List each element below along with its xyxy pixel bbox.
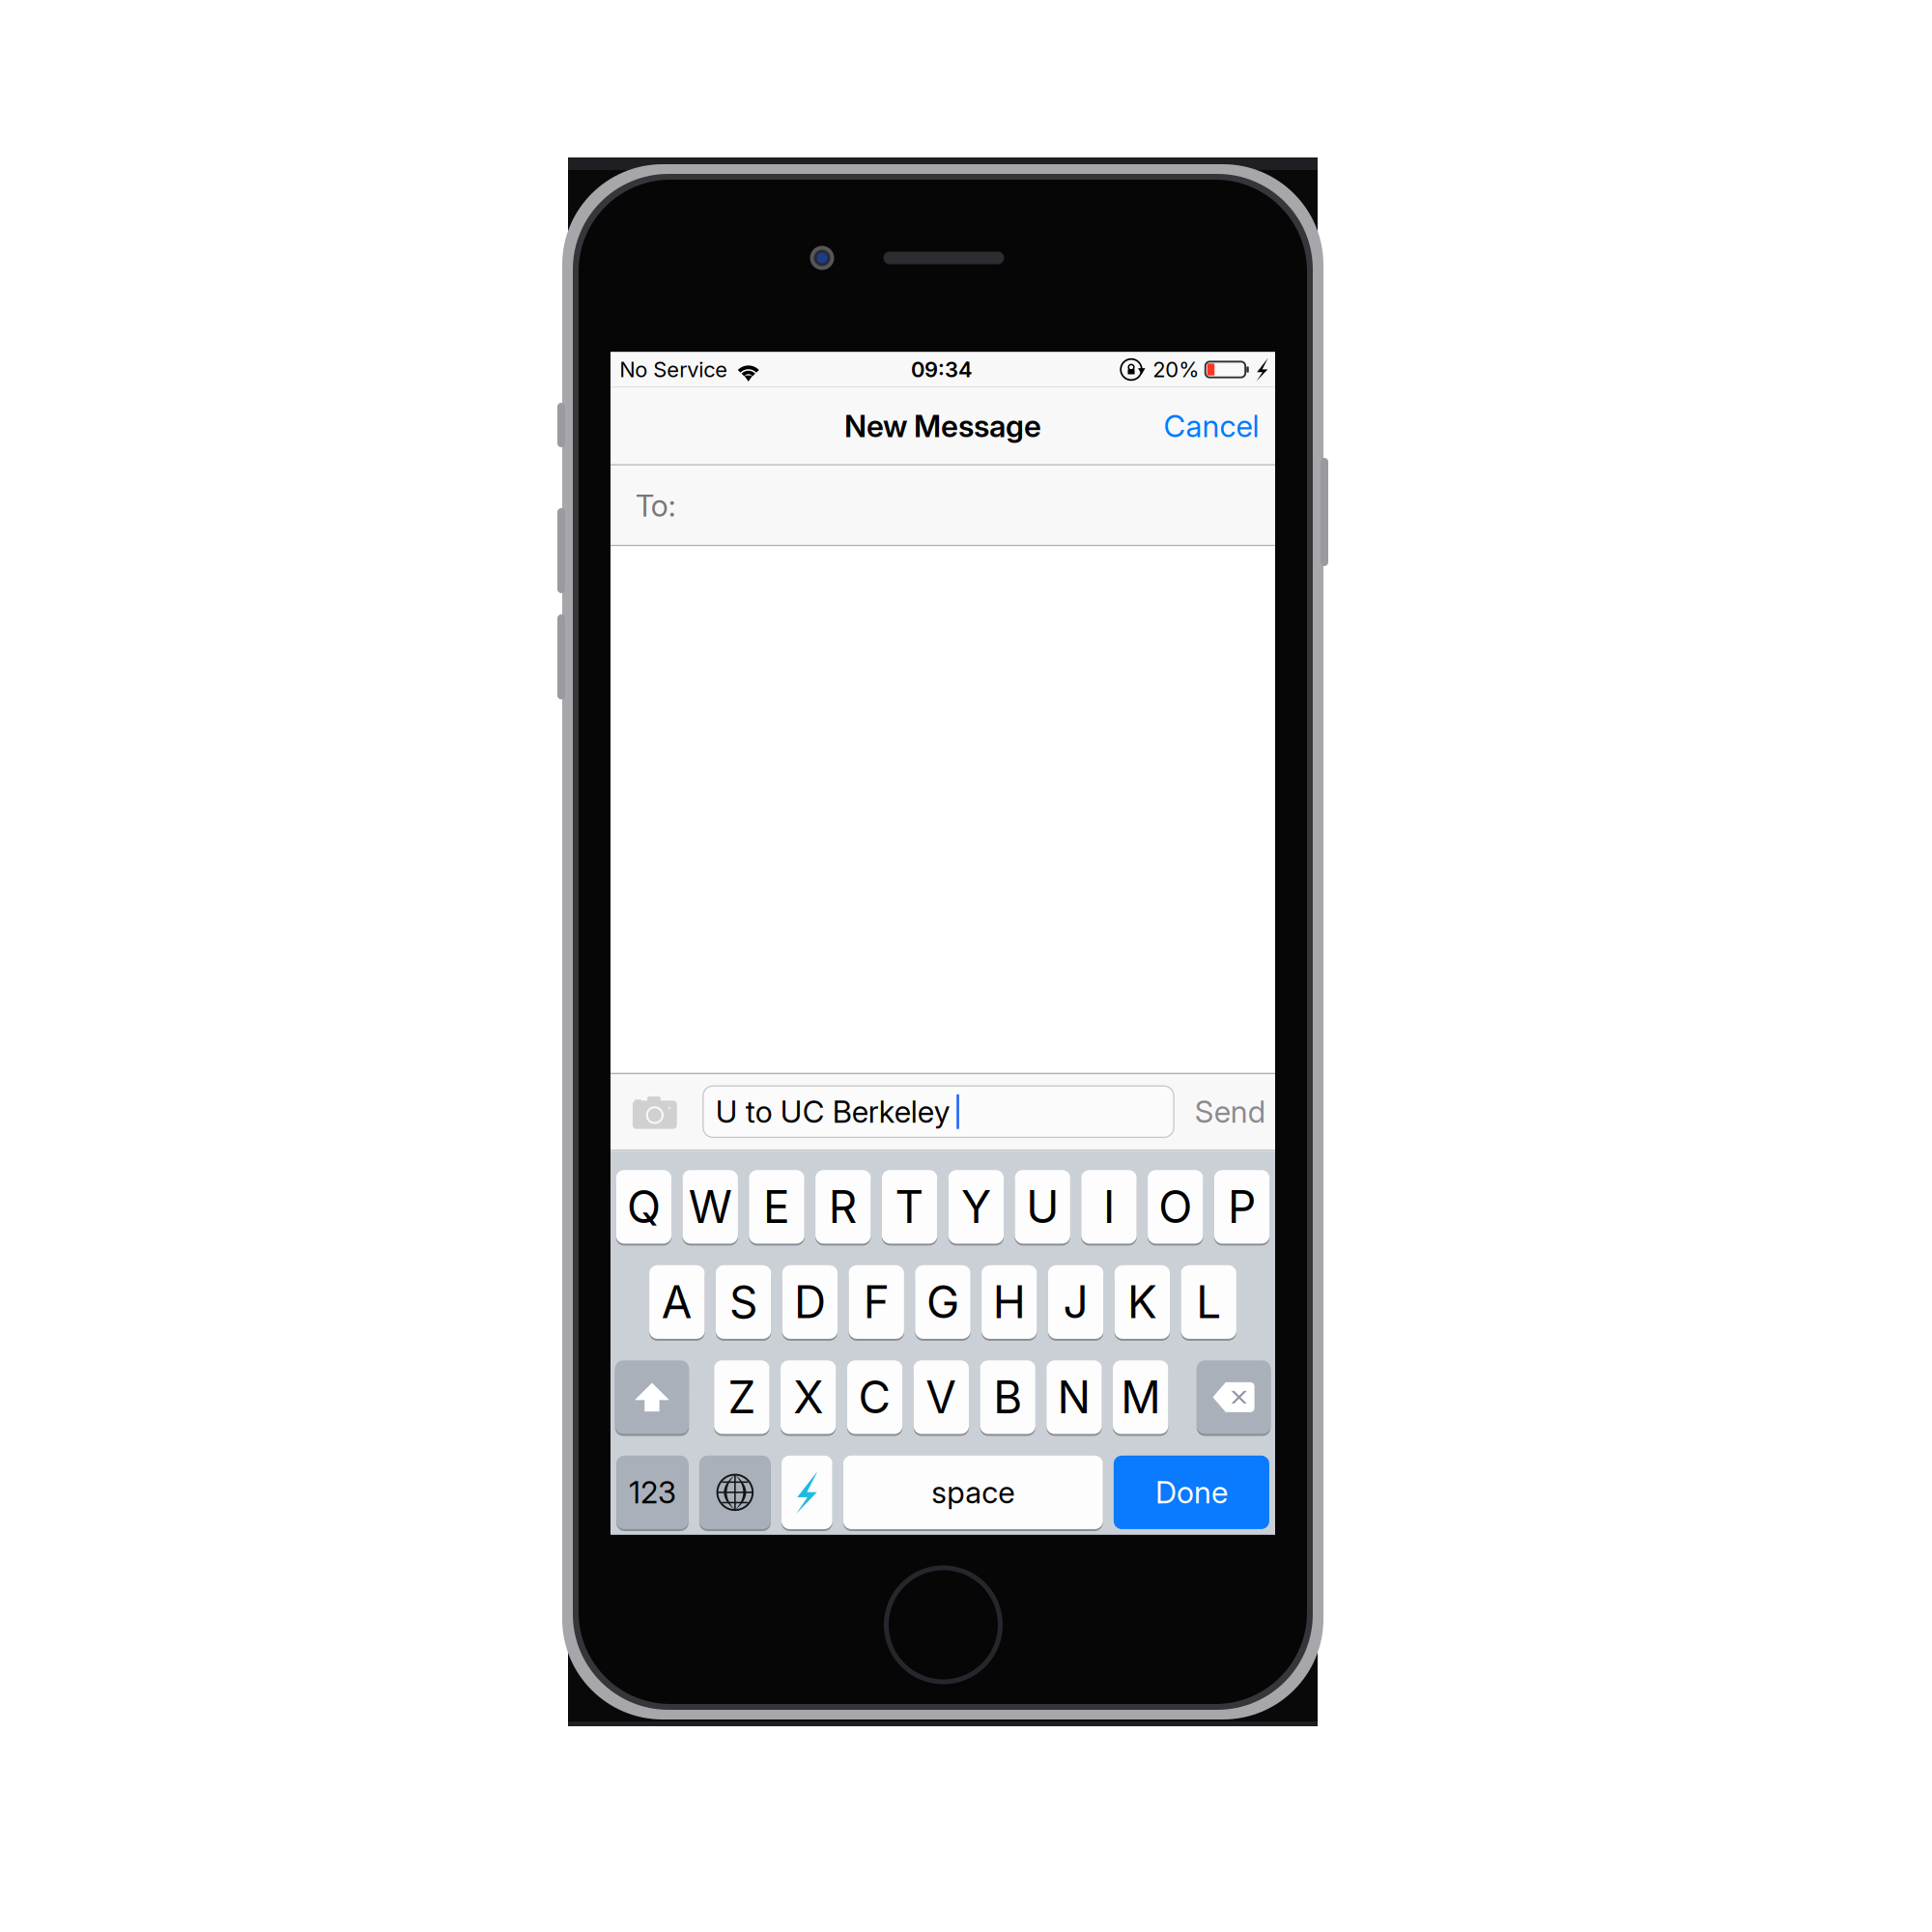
- staticText: space: [932, 1474, 1015, 1511]
- button[interactable]: D: [782, 1265, 838, 1339]
- staticText: P: [1228, 1180, 1256, 1234]
- staticText: Z: [728, 1370, 756, 1424]
- staticText: E: [763, 1180, 790, 1234]
- button[interactable]: A: [649, 1265, 705, 1339]
- button[interactable]: N: [1046, 1360, 1102, 1434]
- button[interactable]: P: [1214, 1170, 1270, 1244]
- staticText: Y: [961, 1180, 991, 1234]
- button[interactable]: B: [980, 1360, 1035, 1434]
- button[interactable]: T: [882, 1170, 937, 1244]
- staticText: T: [895, 1180, 924, 1234]
- button[interactable]: X: [781, 1360, 836, 1434]
- staticText: Cancel: [1164, 408, 1259, 445]
- staticText: U to UC Berkeley: [716, 1093, 950, 1130]
- button[interactable]: Send: [1181, 1079, 1279, 1144]
- button[interactable]: W: [682, 1170, 738, 1244]
- staticText: 123: [629, 1474, 676, 1511]
- staticText: I: [1103, 1180, 1115, 1234]
- button[interactable]: L: [1181, 1265, 1236, 1339]
- staticText: W: [688, 1180, 732, 1234]
- button[interactable]: J: [1048, 1265, 1103, 1339]
- button[interactable]: S: [716, 1265, 771, 1339]
- staticText: 09:34: [911, 357, 973, 382]
- button[interactable]: O: [1148, 1170, 1203, 1244]
- staticText: K: [1127, 1275, 1157, 1329]
- button[interactable]: Next keyboard: [699, 1456, 771, 1529]
- staticText: G: [926, 1275, 959, 1329]
- staticText: L: [1196, 1275, 1221, 1329]
- staticText: D: [794, 1275, 826, 1329]
- button[interactable]: H: [982, 1265, 1037, 1339]
- staticText: X: [793, 1370, 823, 1424]
- button[interactable]: Cancel: [1153, 394, 1270, 459]
- staticText: Done: [1155, 1474, 1228, 1511]
- staticText: R: [829, 1180, 858, 1234]
- button[interactable]: R: [815, 1170, 871, 1244]
- button[interactable]: K: [1114, 1265, 1170, 1339]
- button[interactable]: Dictation: [781, 1456, 832, 1529]
- staticText: V: [926, 1370, 957, 1424]
- button[interactable]: M: [1113, 1360, 1168, 1434]
- button[interactable]: Q: [616, 1170, 671, 1244]
- button[interactable]: E: [749, 1170, 804, 1244]
- staticText: To:: [635, 487, 676, 524]
- button[interactable]: I: [1081, 1170, 1137, 1244]
- button[interactable]: Take photo: [607, 1080, 703, 1143]
- button[interactable]: space: [843, 1456, 1103, 1529]
- button[interactable]: C: [847, 1360, 902, 1434]
- button[interactable]: U: [1015, 1170, 1070, 1244]
- button[interactable]: F: [849, 1265, 904, 1339]
- staticText: M: [1121, 1370, 1160, 1424]
- staticText: O: [1159, 1180, 1192, 1234]
- button[interactable]: G: [915, 1265, 971, 1339]
- button[interactable]: Z: [714, 1360, 770, 1434]
- staticText: F: [863, 1275, 889, 1329]
- staticText: Q: [627, 1180, 661, 1234]
- staticText: J: [1063, 1275, 1088, 1329]
- staticText: C: [858, 1370, 891, 1424]
- button[interactable]: Shift: [615, 1360, 689, 1434]
- button[interactable]: Y: [948, 1170, 1004, 1244]
- button[interactable]: Done: [1114, 1456, 1269, 1529]
- staticText: Send: [1195, 1093, 1265, 1130]
- staticText: N: [1057, 1370, 1091, 1424]
- staticText: S: [729, 1275, 757, 1329]
- staticText: A: [662, 1275, 692, 1329]
- staticText: New Message: [844, 408, 1041, 445]
- staticText: No Service: [619, 357, 728, 382]
- button[interactable]: 123: [616, 1456, 689, 1529]
- button[interactable]: V: [913, 1360, 969, 1434]
- staticText: U: [1026, 1180, 1059, 1234]
- button[interactable]: Delete: [1197, 1360, 1271, 1434]
- staticText: 20%: [1153, 357, 1199, 382]
- staticText: B: [993, 1370, 1022, 1424]
- staticText: H: [993, 1275, 1026, 1329]
